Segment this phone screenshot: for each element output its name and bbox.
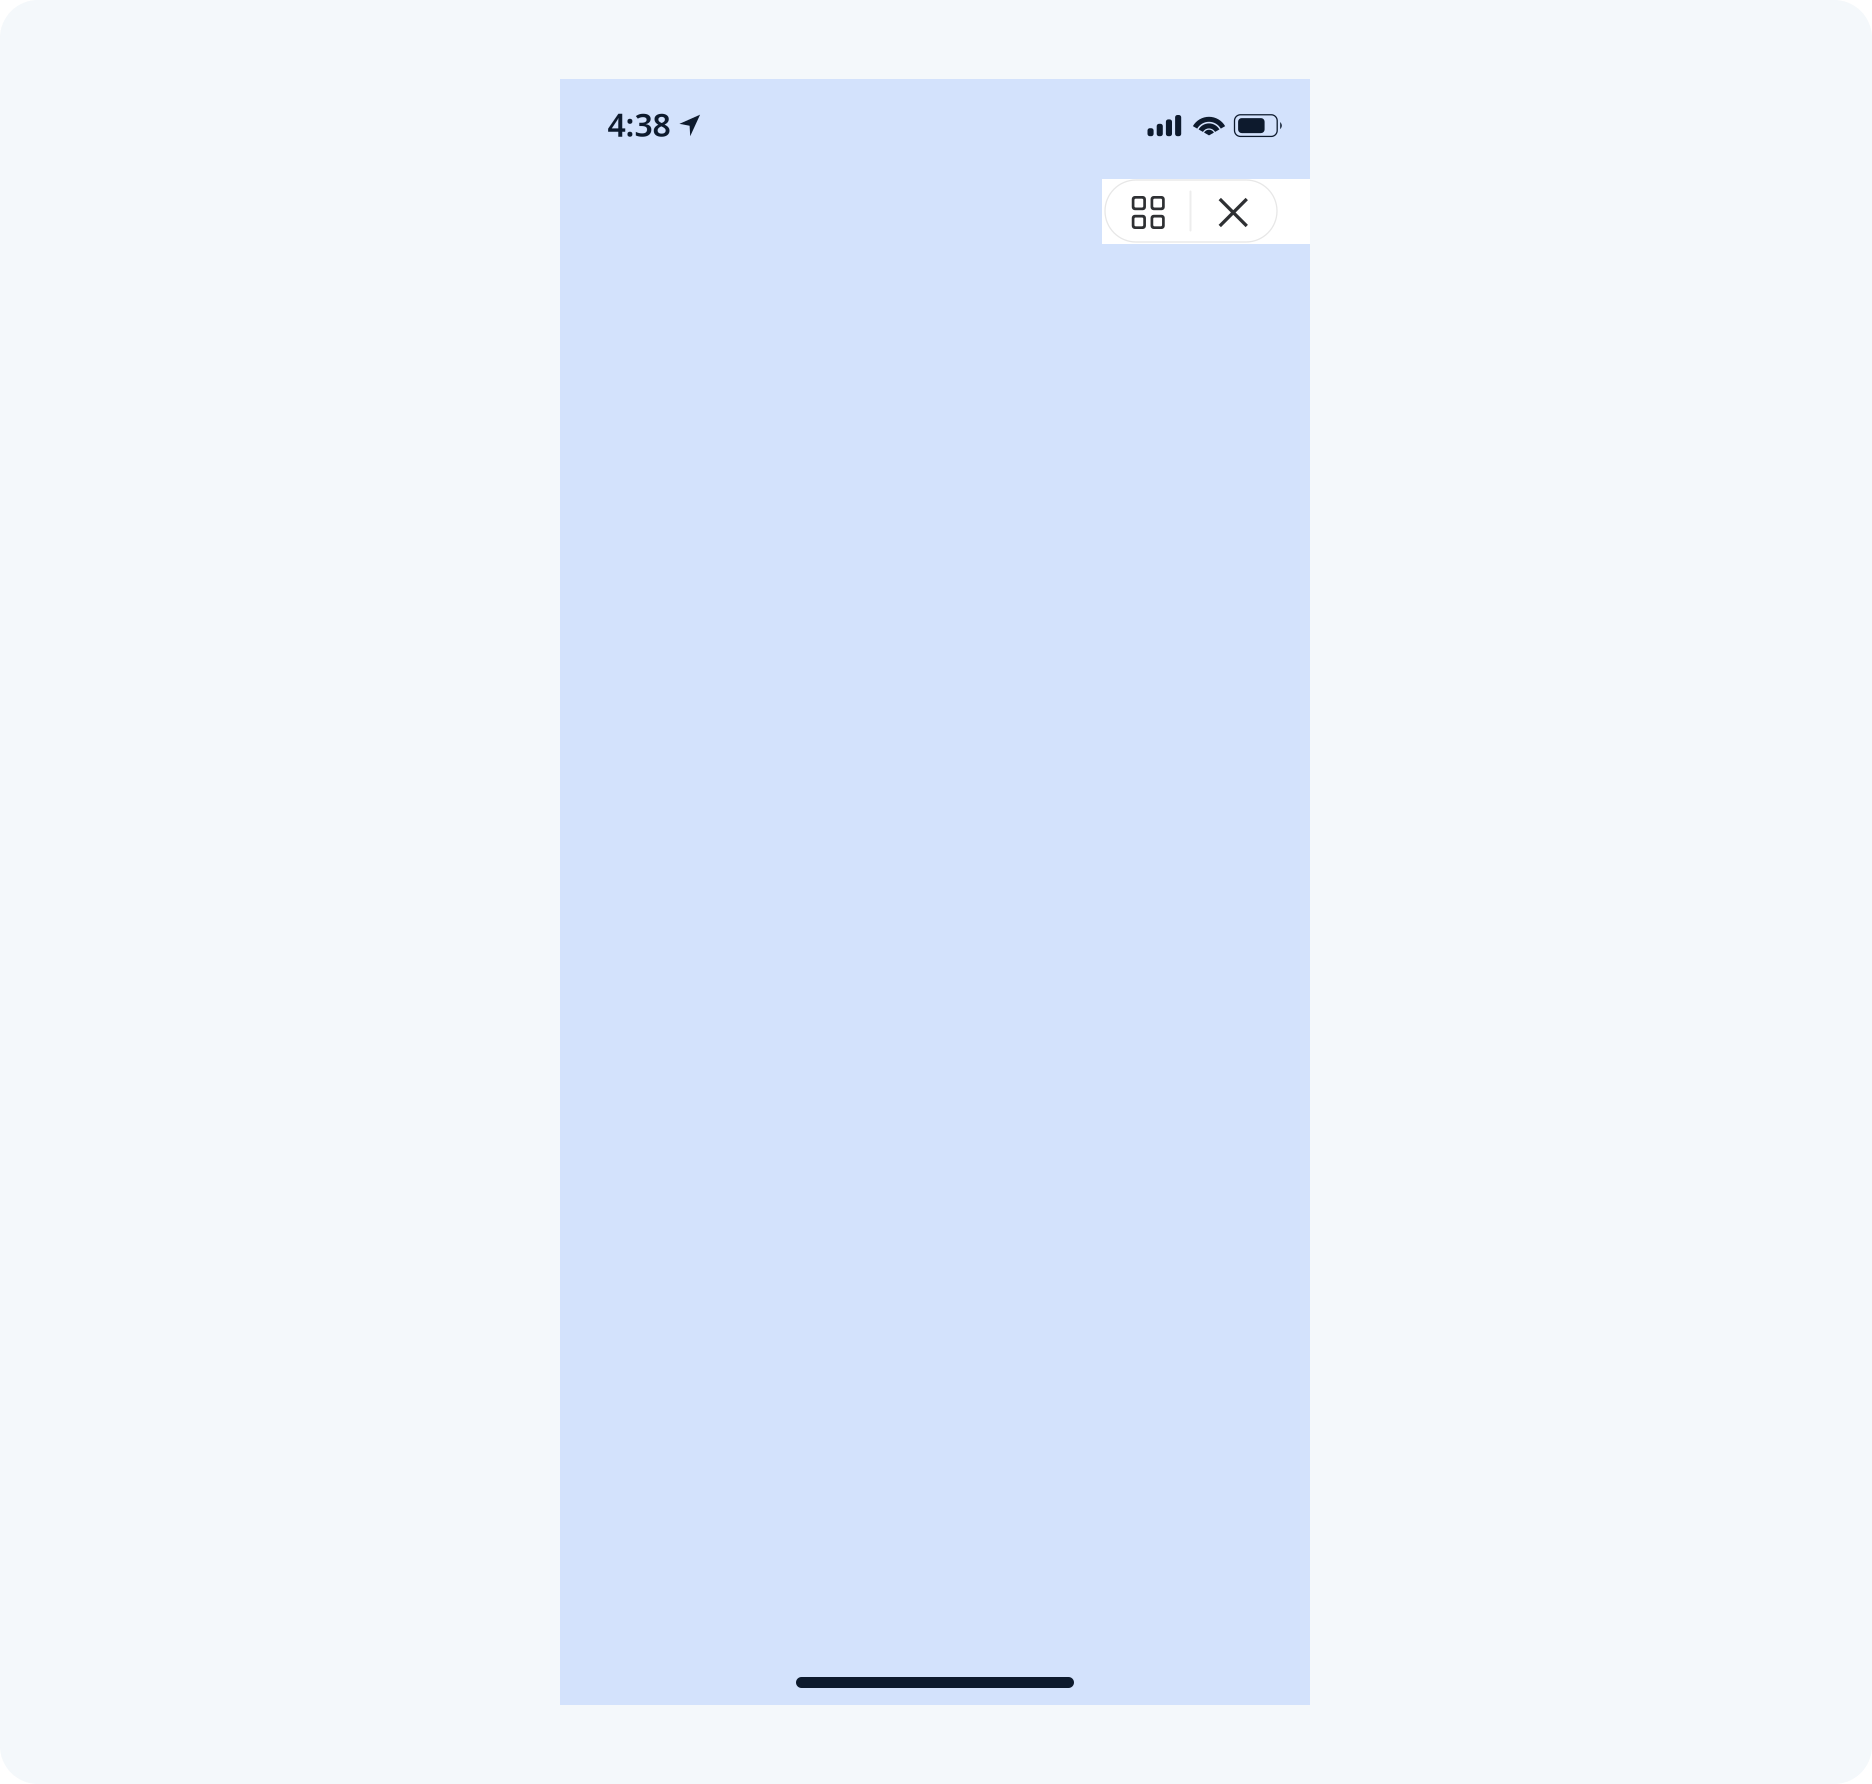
button[interactable]: Show apps [1105, 180, 1189, 242]
staticText: 4:38 [607, 103, 670, 146]
button[interactable]: Close [1191, 180, 1277, 242]
